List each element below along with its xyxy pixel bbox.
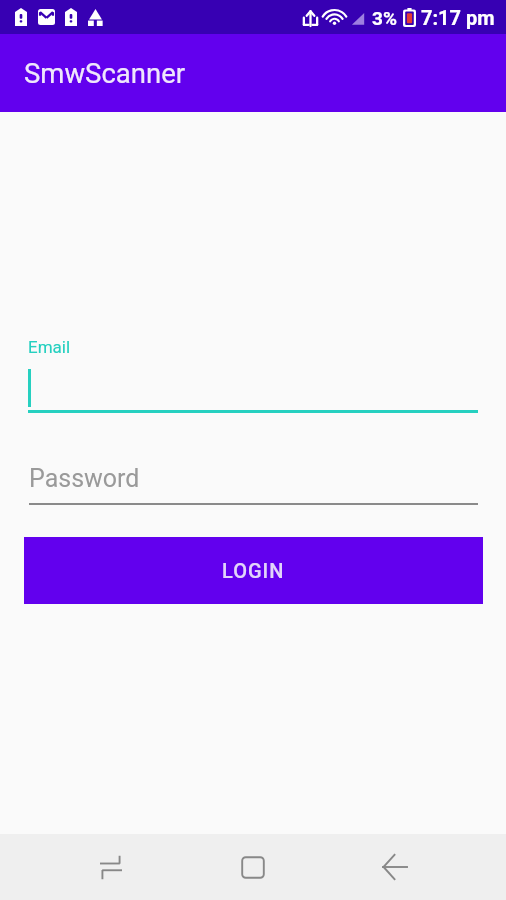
button[interactable]: Email <box>0 337 506 413</box>
button[interactable]: Password <box>0 464 506 505</box>
button[interactable]: Back <box>359 834 431 900</box>
staticText: SmwScanner <box>24 57 186 89</box>
button[interactable]: Recents <box>75 834 147 900</box>
staticText: LOGIN <box>222 559 285 582</box>
staticText: 3% <box>372 7 397 29</box>
button[interactable]: Home <box>217 834 289 900</box>
staticText: Password <box>29 464 140 493</box>
button[interactable]: LOGIN <box>24 537 483 604</box>
staticText: Email <box>28 337 71 357</box>
staticText: 7:17 pm <box>421 6 495 29</box>
